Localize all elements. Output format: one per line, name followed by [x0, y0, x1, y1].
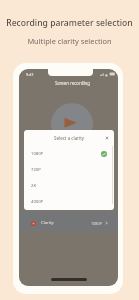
staticText: Clarity	[41, 220, 54, 226]
staticText: Screen recording	[55, 80, 90, 86]
button[interactable]: 1080P	[24, 146, 114, 162]
staticText: 720P	[31, 167, 41, 173]
staticText: 2K	[31, 183, 36, 189]
staticText: 9:41	[26, 72, 34, 77]
staticText: 1080P	[91, 221, 102, 226]
staticText: Multiple clarity selection	[27, 36, 112, 46]
staticText: Select a clarity	[54, 135, 85, 141]
staticText: 1080P	[31, 151, 44, 157]
button[interactable]: Close	[104, 135, 110, 141]
staticText: Recording parameter selection	[6, 17, 133, 29]
staticText: 4000P	[31, 199, 44, 205]
button[interactable]: 2K	[24, 178, 114, 194]
button[interactable]: Play	[51, 103, 93, 145]
button[interactable]: 720P	[24, 162, 114, 178]
button[interactable]: Clarity	[19, 211, 118, 231]
button[interactable]: 4000P	[24, 194, 114, 210]
